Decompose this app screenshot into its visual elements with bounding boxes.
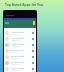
button[interactable]: Install xyxy=(4,42,36,48)
button[interactable]: Install xyxy=(4,60,36,66)
button[interactable]: Top Rated Apps for You xyxy=(5,2,44,7)
button[interactable]: Install xyxy=(4,48,36,54)
button[interactable]: Install xyxy=(4,66,36,72)
button[interactable]: Install xyxy=(4,30,36,36)
staticText: Top Rated Apps for You xyxy=(5,2,44,7)
button[interactable]: Install xyxy=(4,36,36,42)
button[interactable]: Install xyxy=(4,54,36,60)
